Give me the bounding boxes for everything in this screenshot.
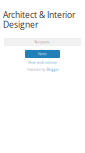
- staticText: Blogger: [46, 67, 58, 72]
- staticText: Powered by: [26, 67, 45, 72]
- staticText: Home: [38, 52, 47, 56]
- button[interactable]: View web version: [0, 60, 85, 65]
- staticText: Designer: [3, 19, 38, 30]
- staticText: No posts.: [34, 40, 50, 44]
- button[interactable]: Powered by: [0, 67, 85, 72]
- button[interactable]: Home: [25, 50, 60, 58]
- staticText: View web version: [28, 60, 57, 65]
- staticText: Architect & Interior: [3, 9, 75, 21]
